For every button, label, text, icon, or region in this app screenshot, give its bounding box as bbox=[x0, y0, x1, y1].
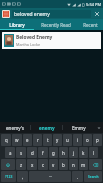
staticText: Emmy bbox=[72, 125, 86, 131]
button[interactable]: Backspace bbox=[89, 159, 102, 170]
staticText: x bbox=[31, 162, 34, 168]
staticText: enemy bbox=[39, 125, 55, 131]
button[interactable]: Beloved Enemy bbox=[2, 32, 101, 49]
staticText: n bbox=[72, 162, 75, 168]
staticText: u bbox=[66, 137, 69, 143]
button[interactable]: Library bbox=[0, 19, 34, 30]
button[interactable]: v bbox=[49, 159, 58, 170]
button[interactable]: n bbox=[69, 159, 78, 170]
button[interactable]: t bbox=[43, 134, 52, 146]
button[interactable]: r bbox=[33, 134, 42, 146]
staticText: Martha Locke bbox=[16, 42, 41, 47]
button[interactable]: . bbox=[72, 171, 83, 182]
staticText: Search bbox=[88, 175, 99, 179]
staticText: o bbox=[86, 137, 89, 143]
button[interactable]: Emmy bbox=[63, 122, 94, 133]
button[interactable]: q bbox=[1, 134, 11, 146]
staticText: Library bbox=[9, 22, 25, 28]
button[interactable]: k bbox=[79, 147, 88, 158]
button[interactable]: Shift bbox=[1, 159, 15, 170]
staticText: , bbox=[22, 174, 24, 180]
button[interactable]: enemy bbox=[31, 122, 62, 133]
staticText: j bbox=[73, 150, 75, 156]
button[interactable]: j bbox=[69, 147, 78, 158]
staticText: i bbox=[77, 137, 79, 143]
staticText: r bbox=[37, 137, 39, 143]
staticText: y bbox=[56, 137, 59, 143]
button[interactable]: App logo bbox=[2, 10, 10, 18]
staticText: b bbox=[62, 162, 65, 168]
button[interactable]: , bbox=[17, 171, 28, 182]
button[interactable]: u bbox=[63, 134, 72, 146]
button[interactable]: x bbox=[27, 159, 37, 170]
staticText: f bbox=[42, 150, 44, 156]
staticText: k bbox=[82, 150, 85, 156]
staticText: e bbox=[26, 137, 29, 143]
staticText: l bbox=[93, 150, 95, 156]
staticText: Recent bbox=[83, 22, 98, 28]
staticText: c bbox=[42, 162, 45, 168]
staticText: v bbox=[52, 162, 55, 168]
button[interactable]: s bbox=[16, 147, 26, 158]
button[interactable]: o bbox=[83, 134, 92, 146]
staticText: a bbox=[9, 150, 12, 156]
staticText: beloved enemy bbox=[14, 11, 50, 18]
button[interactable]: w bbox=[12, 134, 22, 146]
staticText: s bbox=[20, 150, 23, 156]
button[interactable]: d bbox=[27, 147, 37, 158]
button[interactable]: Clear search bbox=[93, 10, 101, 18]
staticText: enemy's bbox=[6, 125, 24, 131]
button[interactable]: Recently Read bbox=[34, 19, 77, 30]
staticText: g bbox=[52, 150, 55, 156]
staticText: ?123 bbox=[5, 174, 13, 179]
staticText: m bbox=[81, 162, 86, 168]
button[interactable]: b bbox=[59, 159, 68, 170]
button[interactable]: beloved enemy bbox=[12, 10, 91, 18]
button[interactable]: Search bbox=[84, 171, 102, 182]
staticText: d bbox=[31, 150, 34, 156]
button[interactable]: e bbox=[23, 134, 32, 146]
staticText: q bbox=[5, 137, 8, 143]
button[interactable]: g bbox=[49, 147, 58, 158]
button[interactable]: a bbox=[5, 147, 15, 158]
button[interactable]: m bbox=[79, 159, 88, 170]
staticText: h bbox=[62, 150, 65, 156]
staticText: p bbox=[96, 137, 99, 143]
button[interactable]: enemy's bbox=[0, 122, 30, 133]
button[interactable]: l bbox=[89, 147, 98, 158]
button[interactable]: c bbox=[38, 159, 48, 170]
button[interactable]: i bbox=[73, 134, 82, 146]
staticText: t bbox=[47, 137, 49, 143]
button[interactable]: More suggestions bbox=[94, 122, 103, 133]
button[interactable]: Symbols bbox=[1, 171, 16, 182]
staticText: z bbox=[20, 162, 23, 168]
button[interactable]: z bbox=[16, 159, 26, 170]
button[interactable]: Recent bbox=[77, 19, 103, 30]
button[interactable]: y bbox=[53, 134, 62, 146]
staticText: . bbox=[77, 174, 79, 180]
staticText: 5:54 PM bbox=[86, 2, 102, 7]
staticText: Beloved Enemy bbox=[16, 34, 53, 41]
button[interactable]: p bbox=[93, 134, 102, 146]
button[interactable]: f bbox=[38, 147, 48, 158]
button[interactable]: Space bbox=[29, 171, 71, 182]
staticText: Recently Read bbox=[41, 22, 71, 28]
button[interactable]: h bbox=[59, 147, 68, 158]
staticText: w bbox=[15, 137, 19, 143]
